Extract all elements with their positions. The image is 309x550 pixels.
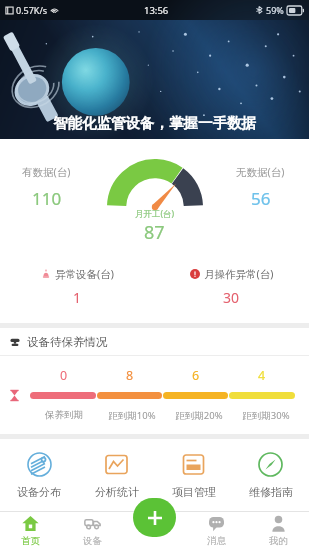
staticText: 月开工(台) bbox=[135, 208, 175, 220]
staticText: 维修指南 bbox=[249, 485, 293, 499]
staticText: 87 bbox=[144, 220, 165, 245]
staticText: 我的 bbox=[269, 535, 288, 547]
staticText: 智能化监管设备，掌握一手数据 bbox=[53, 114, 256, 132]
staticText: 无数据(台) bbox=[236, 165, 285, 179]
button[interactable]: 异常设备(台) bbox=[0, 267, 154, 307]
staticText: 1 bbox=[73, 288, 82, 307]
staticText: 距到期30% bbox=[242, 409, 290, 422]
staticText: 59% bbox=[266, 4, 284, 16]
button[interactable] bbox=[97, 392, 162, 399]
button[interactable]: 设备 bbox=[61, 511, 123, 550]
button[interactable] bbox=[229, 392, 295, 399]
button[interactable] bbox=[30, 392, 96, 399]
button[interactable]: 有数据(台) bbox=[22, 165, 71, 210]
button[interactable]: 项目管理 bbox=[155, 439, 232, 511]
staticText: 月操作异常(台) bbox=[204, 267, 274, 281]
button[interactable]: 月操作异常(台) bbox=[154, 267, 309, 307]
button[interactable]: 设备分布 bbox=[0, 439, 78, 511]
staticText: 0.57K/s bbox=[16, 4, 48, 16]
button[interactable]: 维修指南 bbox=[232, 439, 309, 511]
staticText: 4 bbox=[258, 367, 266, 384]
staticText: 距到期20% bbox=[175, 409, 223, 422]
staticText: 30 bbox=[223, 288, 240, 307]
staticText: 13:56 bbox=[144, 4, 169, 17]
button[interactable] bbox=[163, 392, 228, 399]
staticText: 分析统计 bbox=[95, 485, 139, 499]
staticText: 56 bbox=[251, 187, 271, 210]
staticText: 项目管理 bbox=[172, 485, 216, 499]
staticText: 设备待保养情况 bbox=[27, 335, 108, 349]
staticText: 110 bbox=[32, 187, 62, 210]
staticText: 有数据(台) bbox=[22, 165, 71, 179]
staticText: 设备 bbox=[83, 535, 102, 547]
staticText: 6 bbox=[192, 367, 200, 384]
button[interactable]: 无数据(台) bbox=[236, 165, 285, 210]
button[interactable]: 首页 bbox=[0, 511, 61, 550]
staticText: 首页 bbox=[21, 535, 40, 547]
button[interactable]: Add bbox=[133, 498, 176, 537]
button[interactable]: 智能化监管设备，掌握一手数据 bbox=[0, 20, 309, 139]
button[interactable]: 分析统计 bbox=[78, 439, 155, 511]
staticText: 保养到期 bbox=[45, 409, 83, 421]
staticText: 8 bbox=[126, 367, 134, 384]
staticText: 异常设备(台) bbox=[55, 267, 114, 281]
button[interactable]: 消息 bbox=[185, 511, 247, 550]
staticText: 距到期10% bbox=[108, 409, 156, 422]
button[interactable]: 我的 bbox=[247, 511, 309, 550]
staticText: 消息 bbox=[207, 535, 226, 547]
staticText: 设备分布 bbox=[17, 485, 61, 499]
staticText: 0 bbox=[60, 367, 68, 384]
